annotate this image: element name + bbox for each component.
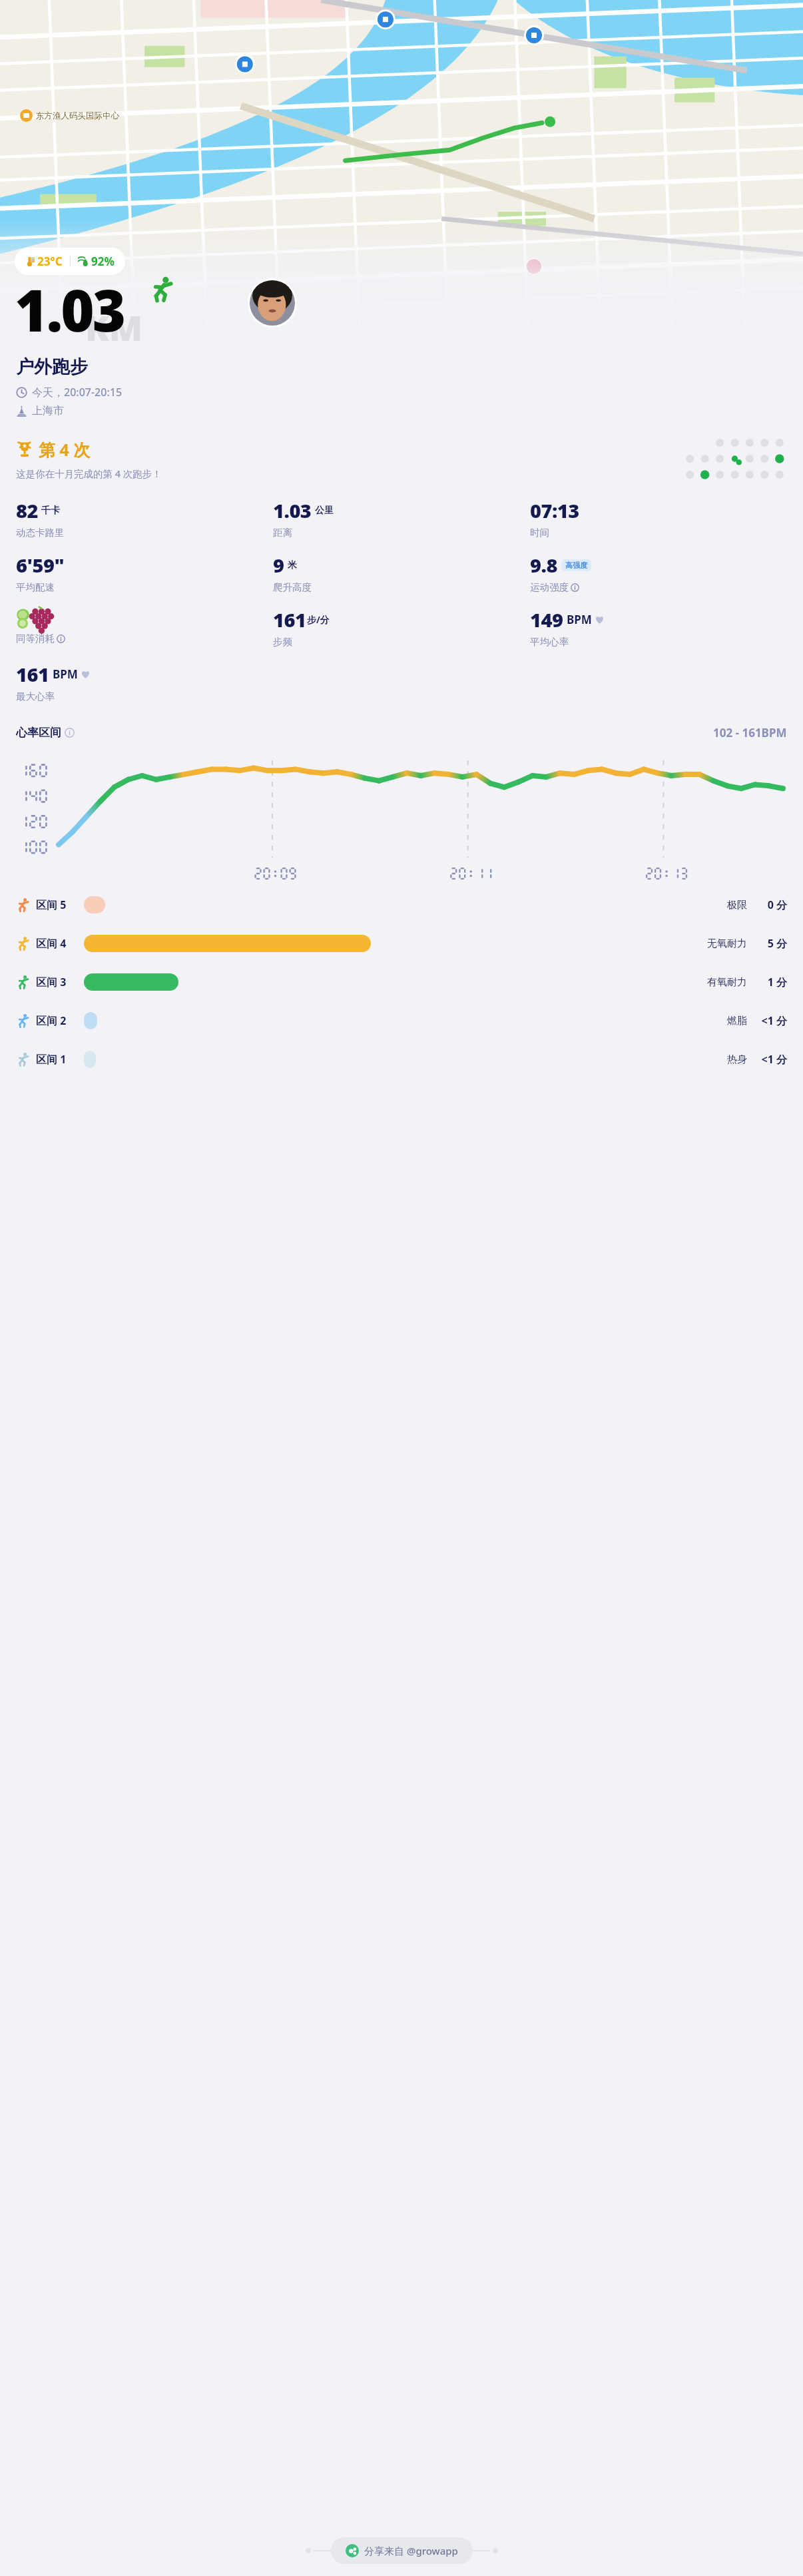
staticText: 区间 2 [36,1013,80,1028]
staticText: 102 - 161BPM [713,725,787,740]
staticText: 无氧耐力 [698,937,747,950]
staticText: 公里 [315,505,334,517]
staticText: <1 分 [755,1013,787,1028]
staticText: <1 分 [755,1052,787,1067]
staticText: 今天，20:07-20:15 [32,385,123,399]
button[interactable]: 区间 2 [0,1001,803,1040]
staticText: 5 分 [755,936,787,951]
staticText: 区间 5 [36,898,80,912]
staticText: 149 [530,607,563,633]
staticText: 分享来自 @growapp [364,2544,458,2557]
staticText: 1 分 [755,975,787,989]
staticText: 距离 [273,527,292,539]
staticText: 161 [16,661,49,687]
button[interactable]: 149 [530,607,787,648]
staticText: 有氧耐力 [698,976,747,989]
staticText: 9 [273,552,284,578]
button[interactable]: 82 [16,497,273,539]
staticText: 6'59" [16,552,65,578]
staticText: 极限 [698,899,747,911]
staticText: 这是你在十月完成的第 4 次跑步！ [16,467,162,480]
staticText: 区间 1 [36,1052,80,1067]
staticText: 热身 [698,1053,747,1066]
staticText: 92% [91,254,115,269]
staticText: 动态卡路里 [16,527,65,539]
button[interactable]: 1.03 [273,497,530,539]
staticText: 高强度 [565,561,587,570]
button[interactable]: 07:13 [530,497,787,539]
button[interactable]: 区间 1 [0,1040,803,1079]
staticText: KM [85,304,143,351]
button[interactable]: 161 [273,607,530,648]
staticText: 心率区间 [16,726,61,740]
staticText: 23°C [37,254,63,269]
staticText: BPM [567,612,592,627]
button[interactable]: 9.8 [530,552,787,593]
button[interactable]: 同等消耗 [16,607,273,644]
staticText: 东方渔人码头国际中心 [36,111,119,121]
staticText: 9.8 [530,552,557,578]
staticText: 0 分 [755,898,787,912]
button[interactable]: 区间 5 [0,886,803,924]
button[interactable]: 161 [16,661,273,702]
staticText: 平均心率 [530,636,569,648]
staticText: BPM [53,666,78,682]
staticText: 161 [273,607,306,633]
staticText: 1.03 [15,270,125,348]
staticText: 82 [16,497,38,523]
staticText: 第 4 次 [39,438,91,461]
staticText: 燃脂 [698,1015,747,1027]
staticText: 区间 4 [36,936,80,951]
button[interactable]: 分享来自 @growapp [331,2537,473,2564]
staticText: 07:13 [530,497,579,523]
staticText: 最大心率 [16,690,55,702]
staticText: 1.03 [273,497,312,523]
staticText: 步频 [273,636,292,648]
staticText: 平均配速 [16,581,55,593]
staticText: 区间 3 [36,975,80,989]
button[interactable]: 23°C [15,248,125,275]
staticText: 爬升高度 [273,581,312,593]
staticText: 米 [288,559,297,571]
button[interactable]: 6'59" [16,552,273,593]
staticText: 时间 [530,527,549,539]
staticText: 同等消耗 [16,633,55,644]
staticText: 上海市 [32,404,64,417]
button[interactable]: 区间 4 [0,924,803,963]
staticText: 千卡 [41,505,60,517]
staticText: 步/分 [307,613,330,626]
button[interactable]: 区间 3 [0,963,803,1001]
staticText: 运动强度 [530,581,569,593]
button[interactable]: 9 [273,552,530,593]
button[interactable]: Profile photo [250,280,295,326]
staticText: 户外跑步 [16,356,88,378]
